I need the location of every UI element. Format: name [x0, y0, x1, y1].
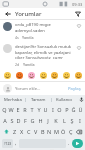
button[interactable]: Y: [35, 104, 42, 115]
button[interactable]: B: [39, 126, 46, 137]
button[interactable]: Voice input: [77, 95, 85, 104]
button[interactable]: D: [15, 115, 22, 126]
staticText: T: [30, 106, 34, 113]
button[interactable]: destijan9tr Sonsuzluk mutuk kapanlar, el…: [0, 42, 85, 69]
button[interactable]: A: [1, 115, 8, 126]
button[interactable]: grin: [62, 71, 70, 79]
staticText: Yorumlar: [15, 10, 42, 18]
button[interactable]: Shift: [1, 126, 11, 137]
button[interactable]: Like: [75, 22, 82, 29]
staticText: F: [24, 117, 27, 124]
button[interactable]: clap: [3, 71, 11, 79]
button[interactable]: T: [28, 104, 35, 115]
button[interactable]: Yorum ekle...: [15, 86, 67, 92]
button[interactable]: Backspace: [74, 126, 84, 137]
button[interactable]: Numbers: [2, 139, 13, 148]
button[interactable]: Ç: [67, 126, 74, 137]
button[interactable]: Tamam: [26, 95, 51, 104]
button[interactable]: S: [8, 115, 15, 126]
button[interactable]: W: [7, 104, 14, 115]
staticText: W: [8, 106, 14, 113]
staticText: Ü: [78, 106, 83, 113]
button[interactable]: K: [52, 115, 60, 126]
button[interactable]: Q: [1, 104, 7, 115]
staticText: Y: [37, 106, 41, 113]
button[interactable]: wow: [74, 71, 82, 79]
button[interactable]: J: [44, 115, 52, 126]
staticText: D: [16, 117, 21, 124]
staticText: B: [41, 128, 45, 135]
staticText: H: [38, 117, 43, 124]
button[interactable]: Back: [3, 9, 12, 18]
staticText: A: [3, 117, 7, 124]
button[interactable]: L: [60, 115, 68, 126]
button[interactable]: E: [14, 104, 21, 115]
staticText: Yorum ekle...: [15, 86, 41, 92]
staticText: Tamam: [31, 97, 46, 103]
button[interactable]: .: [66, 139, 72, 148]
button[interactable]: Ğ: [70, 104, 77, 115]
button[interactable]: Paylaş: [67, 86, 82, 92]
staticText: 4s: [15, 35, 19, 40]
button[interactable]: O: [56, 104, 63, 115]
button[interactable]: G: [29, 115, 36, 126]
button[interactable]: Ü: [77, 104, 84, 115]
button[interactable]: heart: [27, 71, 35, 79]
button[interactable]: cry: [50, 71, 58, 79]
button[interactable]: U: [42, 104, 49, 115]
button[interactable]: N: [46, 126, 53, 137]
staticText: J: [47, 117, 49, 124]
button[interactable]: Yanıtla: [22, 35, 34, 40]
staticText: Ş: [70, 117, 74, 124]
staticText: M: [54, 128, 59, 135]
staticText: P: [65, 106, 69, 113]
button[interactable]: Send: [72, 139, 83, 148]
button[interactable]: I: [76, 115, 84, 126]
staticText: G: [30, 117, 35, 124]
staticText: I: [52, 106, 54, 113]
button[interactable]: P: [63, 104, 70, 115]
staticText: N: [47, 128, 52, 135]
button[interactable]: R: [21, 104, 28, 115]
staticText: .: [68, 140, 70, 147]
button[interactable]: Ş: [68, 115, 76, 126]
staticText: Merhaba: [4, 97, 22, 103]
staticText: K: [54, 117, 58, 124]
button[interactable]: smile: [39, 71, 47, 79]
button[interactable]: I: [49, 104, 56, 115]
staticText: destijan9tr Sonsuzluk mutuk kapanlar, el…: [15, 44, 73, 60]
button[interactable]: C: [25, 126, 32, 137]
staticText: C: [27, 128, 31, 135]
button[interactable]: Kullanıcı: [52, 95, 77, 104]
staticText: Kullanıcı: [56, 97, 73, 103]
button[interactable]: Yanıtla: [23, 62, 35, 67]
staticText: Q: [2, 106, 7, 113]
button[interactable]: ,: [13, 139, 19, 148]
staticText: Ç: [69, 128, 73, 135]
staticText: L: [63, 117, 66, 124]
button[interactable]: H: [36, 115, 44, 126]
staticText: U: [43, 106, 48, 113]
button[interactable]: Merhaba: [0, 95, 25, 104]
button[interactable]: V: [32, 126, 39, 137]
staticText: Ğ: [71, 106, 76, 113]
button[interactable]: fire: [15, 71, 23, 79]
button[interactable]: F: [22, 115, 29, 126]
staticText: ordu_p8190 mqpe ademyol.saden: [15, 22, 73, 33]
staticText: Ö: [61, 128, 66, 135]
staticText: ?123: [4, 141, 12, 146]
staticText: I: [79, 117, 81, 124]
button[interactable]: ordu_p8190 mqpe ademyol.saden: [0, 20, 85, 42]
button[interactable]: Like: [75, 44, 82, 51]
staticText: X: [20, 128, 24, 135]
staticText: V: [34, 128, 38, 135]
button[interactable]: Filter: [73, 9, 82, 18]
button[interactable]: M: [53, 126, 60, 137]
button[interactable]: X: [18, 126, 25, 137]
staticText: 2d: [15, 62, 20, 67]
button[interactable]: Z: [11, 126, 18, 137]
staticText: Z: [13, 128, 17, 135]
staticText: 09:33: [72, 2, 83, 7]
button[interactable]: Ö: [60, 126, 67, 137]
